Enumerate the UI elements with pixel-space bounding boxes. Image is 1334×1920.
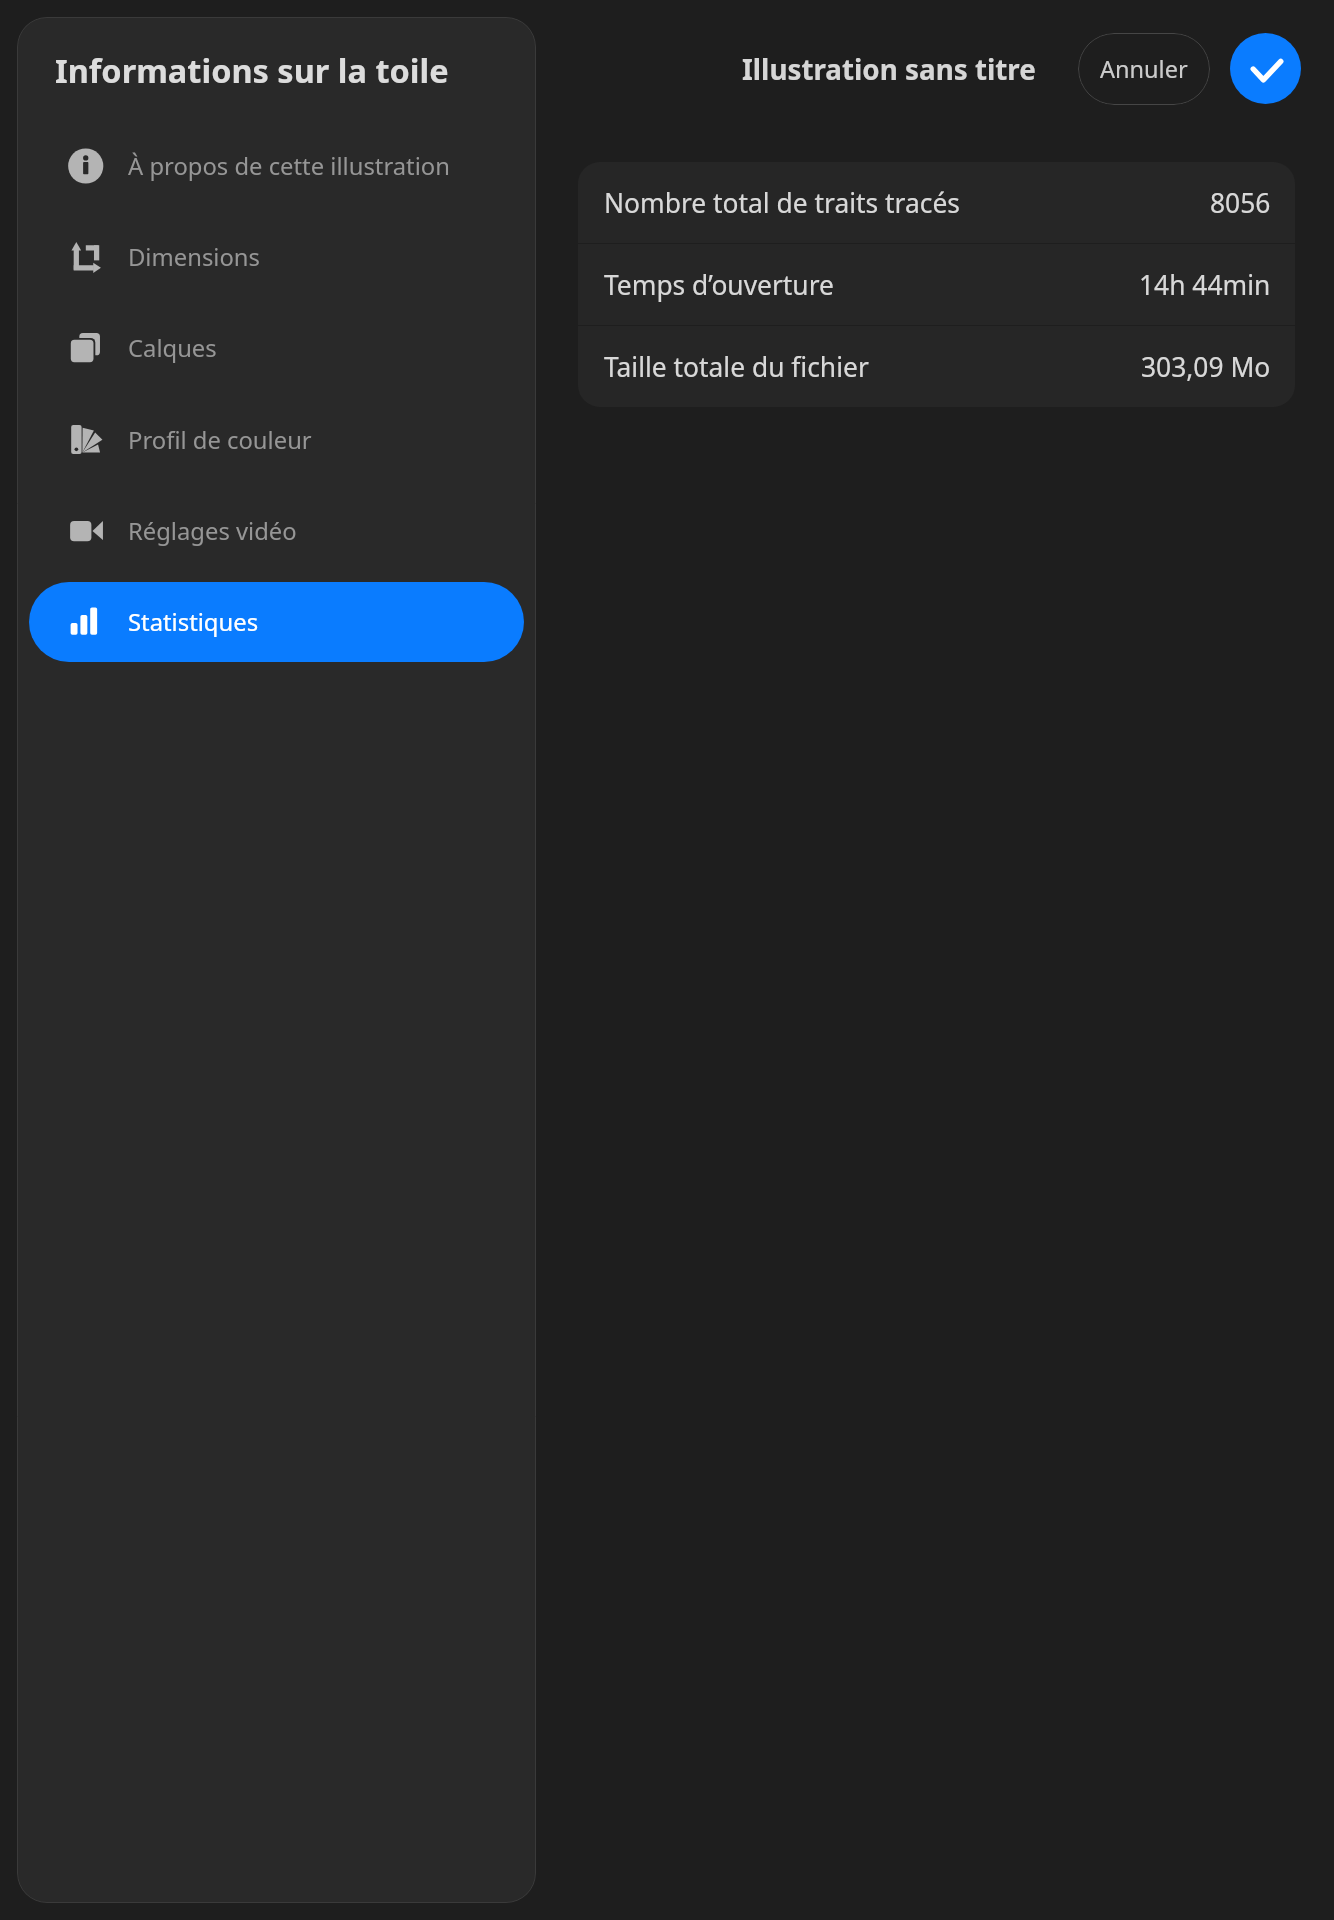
button[interactable]: Temps d’ouverture [578,244,1295,325]
staticText: Profil de couleur [128,424,312,456]
staticText: Calques [128,332,217,364]
staticText: 14h 44min [1139,267,1271,303]
button[interactable]: Confirmer [1230,33,1301,104]
button[interactable]: Dimensions [29,217,524,297]
staticText: Informations sur la toile [55,48,449,92]
button[interactable]: Annuler [1078,33,1210,105]
staticText: À propos de cette illustration [128,150,450,182]
staticText: Annuler [1100,53,1188,85]
staticText: Réglages vidéo [128,515,297,547]
staticText: Taille totale du fichier [604,349,869,385]
staticText: Nombre total de traits tracés [604,185,960,221]
button[interactable]: Calques [29,308,524,388]
button[interactable]: Taille totale du fichier [578,326,1295,407]
staticText: Statistiques [128,606,259,638]
button[interactable]: Nombre total de traits tracés [578,162,1295,243]
staticText: 8056 [1210,185,1271,221]
button[interactable]: Statistiques [29,582,524,662]
button[interactable]: Réglages vidéo [29,491,524,571]
staticText: Temps d’ouverture [604,267,834,303]
button[interactable]: Profil de couleur [29,400,524,480]
staticText: 303,09 Mo [1141,349,1271,385]
staticText: Dimensions [128,241,260,273]
staticText: Illustration sans titre [742,50,1036,88]
button[interactable]: À propos de cette illustration [29,126,524,206]
